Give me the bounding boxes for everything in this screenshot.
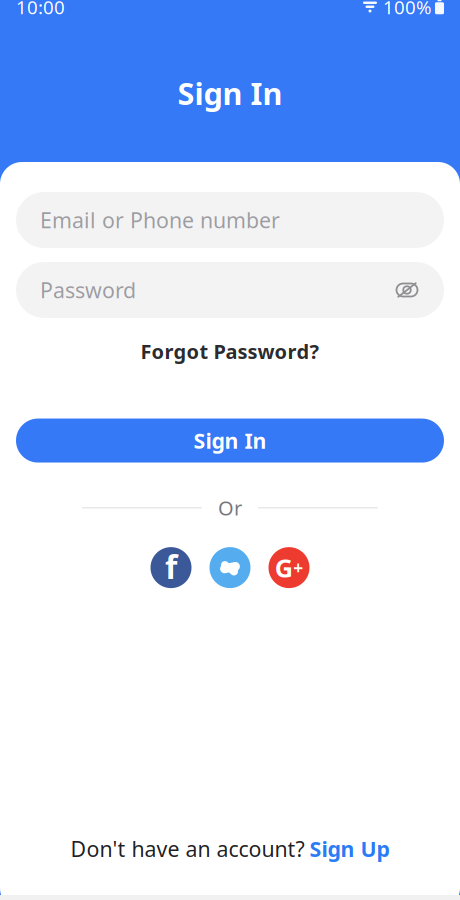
staticText: Or	[218, 495, 242, 521]
staticText: Don't have an account?	[70, 835, 304, 863]
button[interactable]: Sign In	[16, 419, 444, 463]
button[interactable]: Sign in with Facebook	[150, 547, 191, 588]
button[interactable]: Password	[16, 262, 444, 318]
staticText: 10:00	[16, 0, 65, 19]
staticText: Sign Up	[309, 835, 389, 863]
button[interactable]: Sign in with Google	[268, 547, 309, 588]
button[interactable]: Don't have an account?	[70, 831, 389, 867]
staticText: 100%	[383, 0, 432, 19]
staticText: Sign In	[177, 73, 282, 113]
button[interactable]: Sign in with Twitter	[209, 547, 250, 588]
staticText: f	[165, 545, 177, 588]
staticText: +	[293, 556, 303, 579]
staticText: Email or Phone number	[40, 206, 280, 234]
button[interactable]: Forgot Password?	[130, 332, 329, 371]
staticText: G	[275, 551, 293, 584]
staticText: Forgot Password?	[140, 338, 319, 365]
staticText: Password	[40, 276, 136, 304]
staticText: Sign In	[193, 426, 266, 455]
button[interactable]: Email or Phone number	[16, 192, 444, 248]
